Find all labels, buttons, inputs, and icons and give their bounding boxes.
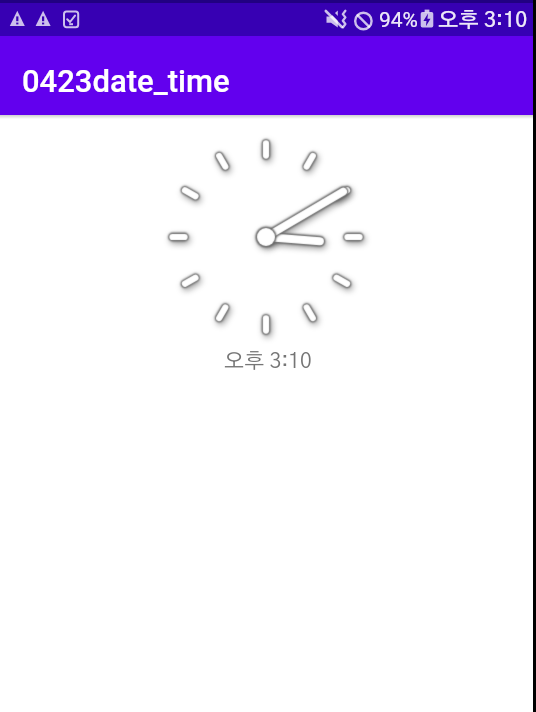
staticText: 0423date_time bbox=[22, 63, 230, 99]
staticText: 94% bbox=[379, 8, 418, 33]
staticText: 오후 3:10 bbox=[438, 10, 528, 31]
staticText: 오후 3:10 bbox=[224, 351, 312, 372]
